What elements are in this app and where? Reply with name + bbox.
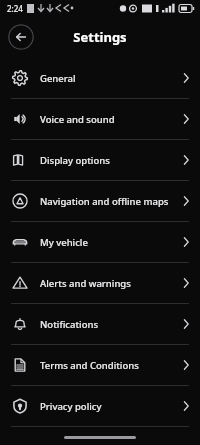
staticText: Display options (40, 154, 181, 167)
button[interactable]: General (0, 58, 200, 98)
button[interactable]: Voice and sound (0, 99, 200, 139)
button[interactable]: Navigation and offline maps (0, 181, 200, 221)
button[interactable]: Display options (0, 140, 200, 180)
button[interactable]: Notifications (0, 304, 200, 344)
staticText: Voice and sound (40, 113, 181, 126)
staticText: Navigation and offline maps (40, 195, 181, 208)
button[interactable]: Terms and Conditions (0, 345, 200, 385)
staticText: Notifications (40, 318, 181, 331)
staticText: Alerts and warnings (40, 277, 181, 290)
staticText: My vehicle (40, 236, 181, 249)
button[interactable]: Back (8, 24, 34, 50)
button[interactable]: Privacy policy (0, 386, 200, 426)
staticText: Privacy policy (40, 400, 181, 413)
staticText: Settings (73, 28, 127, 46)
staticText: Terms and Conditions (40, 359, 181, 372)
button[interactable]: My vehicle (0, 222, 200, 262)
staticText: General (40, 72, 181, 85)
button[interactable]: Alerts and warnings (0, 263, 200, 303)
staticText: 2:24 (7, 3, 23, 14)
